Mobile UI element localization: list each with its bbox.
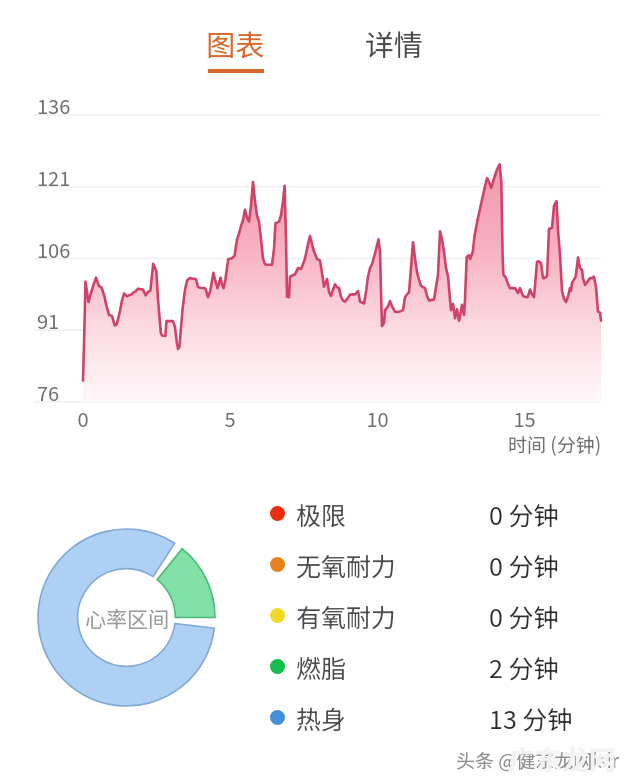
staticText: 热身	[296, 700, 347, 736]
staticText: 5	[224, 404, 236, 433]
staticText: 15	[513, 404, 536, 433]
button[interactable]: 热身	[270, 692, 610, 743]
staticText: 时间 (分钟)	[508, 430, 602, 458]
staticText: 图表	[206, 22, 265, 64]
button[interactable]: 详情	[347, 22, 441, 84]
staticText: 0	[77, 404, 89, 433]
staticText: 详情	[365, 22, 424, 64]
button[interactable]: 极限	[270, 488, 610, 539]
button[interactable]: 燃脂	[270, 641, 610, 692]
staticText: 121	[37, 163, 71, 192]
staticText: 0 分钟	[489, 547, 559, 583]
staticText: 136	[37, 91, 71, 120]
staticText: 燃脂	[296, 649, 347, 685]
staticText: 极限	[296, 496, 347, 532]
staticText: 76	[37, 378, 60, 407]
staticText: 有氧耐力	[296, 598, 397, 634]
staticText: 13 分钟	[489, 700, 573, 736]
button[interactable]: 图表	[188, 22, 282, 84]
staticText: 心率区间	[85, 603, 169, 633]
staticText: 2 分钟	[489, 649, 559, 685]
staticText: 0 分钟	[489, 598, 559, 634]
staticText: 10	[366, 404, 389, 433]
staticText: 91	[37, 306, 60, 335]
staticText: 广东龙网	[508, 739, 616, 778]
button[interactable]: 无氧耐力	[270, 539, 610, 590]
button[interactable]: 有氧耐力	[270, 590, 610, 641]
staticText: 头条 @健东龙网lsir	[456, 746, 620, 774]
staticText: 106	[37, 235, 71, 264]
staticText: 无氧耐力	[296, 547, 397, 583]
staticText: 0 分钟	[489, 496, 559, 532]
